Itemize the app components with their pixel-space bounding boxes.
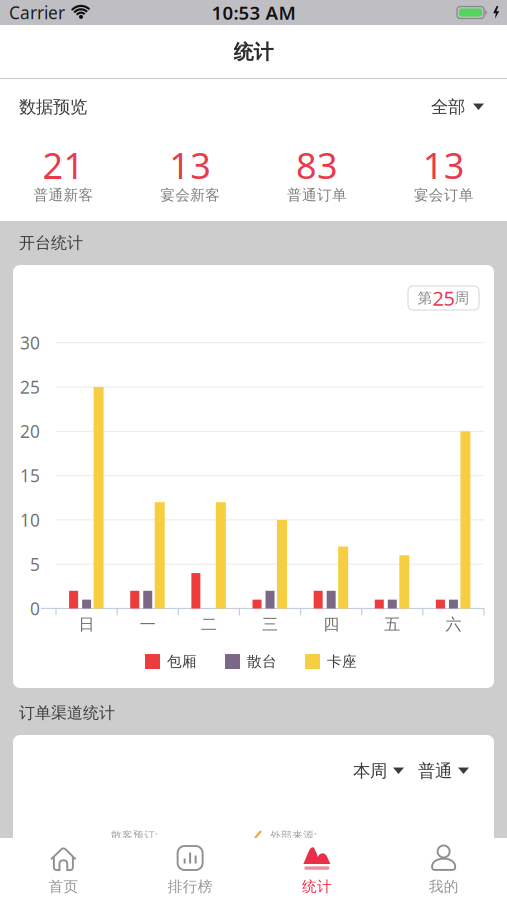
button[interactable]: 统计	[253, 838, 380, 899]
staticText: 10:53 AM	[211, 0, 295, 25]
button[interactable]: 本周	[353, 760, 404, 782]
staticText: 开台统计	[19, 233, 83, 253]
staticText: 包厢	[167, 652, 197, 670]
staticText: 订单渠道统计	[19, 703, 115, 723]
staticText: 13	[423, 141, 465, 189]
staticText: 一	[140, 615, 156, 634]
staticText: 统计	[233, 40, 273, 64]
staticText: 普通	[418, 760, 452, 782]
button[interactable]: 首页	[0, 838, 127, 899]
staticText: 散台	[247, 652, 277, 670]
staticText: 10	[20, 508, 40, 531]
staticText: 0	[30, 597, 40, 620]
staticText: 15	[20, 464, 40, 487]
staticText: 四	[323, 615, 339, 634]
staticText: 散客预订:	[111, 828, 158, 842]
staticText: 二	[201, 615, 217, 634]
staticText: 排行榜	[168, 877, 213, 895]
staticText: 五	[384, 615, 400, 634]
button[interactable]: 普通	[418, 760, 469, 782]
staticText: 普通订单	[287, 186, 347, 204]
staticText: 数据预览	[19, 96, 87, 118]
staticText: 25	[432, 285, 454, 311]
staticText: 5	[30, 553, 40, 576]
staticText: 六	[445, 615, 461, 634]
staticText: 我的	[429, 877, 459, 895]
staticText: 宴会新客	[160, 186, 220, 204]
staticText: 21	[42, 141, 84, 189]
staticText: 本周	[353, 760, 387, 782]
staticText: 日	[79, 615, 95, 634]
button[interactable]: 我的	[380, 838, 507, 899]
button[interactable]: 全部	[431, 96, 484, 118]
staticText: 25	[20, 375, 40, 398]
staticText: 20	[20, 420, 40, 443]
staticText: 宴会订单	[414, 186, 474, 204]
staticText: 卡座	[327, 652, 357, 670]
button[interactable]: 排行榜	[127, 838, 254, 899]
staticText: 统计	[302, 877, 332, 895]
staticText: 13	[169, 141, 211, 189]
staticText: 首页	[48, 877, 78, 895]
staticText: 第	[417, 289, 432, 307]
staticText: 普通新客	[33, 186, 93, 204]
staticText: 83	[296, 141, 338, 189]
staticText: 周	[454, 289, 469, 307]
staticText: Carrier	[9, 1, 65, 24]
staticText: 全部	[431, 96, 465, 118]
staticText: 三	[262, 615, 278, 634]
staticText: 外部来源:	[270, 828, 317, 842]
staticText: 30	[20, 331, 40, 354]
